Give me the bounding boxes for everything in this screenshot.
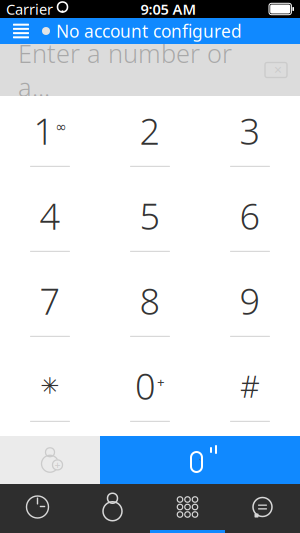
staticText: 1 <box>33 107 54 155</box>
button[interactable]: Menu <box>4 18 38 44</box>
button[interactable]: 5 <box>100 181 200 266</box>
button[interactable]: ✳ <box>0 351 100 436</box>
staticText: 📞 <box>199 459 201 461</box>
staticText: ✳ <box>40 373 59 399</box>
staticText: + <box>157 373 165 391</box>
button[interactable]: Recents <box>0 484 75 533</box>
button[interactable]: 2 <box>100 96 200 181</box>
staticText: 0 <box>135 362 156 410</box>
staticText: Enter a number or a... <box>18 36 232 104</box>
staticText: 3 <box>239 107 260 155</box>
staticText: + <box>54 458 60 472</box>
button[interactable]: 3 <box>200 96 300 181</box>
staticText: ∞ <box>55 119 66 134</box>
button[interactable]: 4 <box>0 181 100 266</box>
button[interactable]: 0 <box>100 351 200 436</box>
button[interactable]: 7 <box>0 266 100 351</box>
button[interactable]: Add contact <box>0 436 100 484</box>
button[interactable]: 1 <box>0 96 100 181</box>
staticText: # <box>240 365 260 406</box>
button[interactable]: # <box>200 351 300 436</box>
staticText: 8 <box>139 277 160 325</box>
button[interactable]: Call <box>100 436 300 484</box>
button[interactable]: Keypad <box>150 484 225 533</box>
button[interactable]: 8 <box>100 266 200 351</box>
staticText: No account configured <box>56 19 242 42</box>
staticText: ✕ <box>273 64 282 76</box>
button[interactable]: 6 <box>200 181 300 266</box>
staticText: 9:05 AM <box>140 0 196 19</box>
button[interactable]: Backspace <box>256 52 296 88</box>
staticText: Carrier <box>6 0 53 19</box>
button[interactable]: Messages <box>225 484 300 533</box>
staticText: 6 <box>239 192 260 240</box>
staticText: 7 <box>39 277 60 325</box>
staticText: 9 <box>239 277 260 325</box>
button[interactable]: Contacts <box>75 484 150 533</box>
staticText: 5 <box>139 192 160 240</box>
staticText: 2 <box>139 107 160 155</box>
staticText: 4 <box>39 192 60 240</box>
button[interactable]: 9 <box>200 266 300 351</box>
